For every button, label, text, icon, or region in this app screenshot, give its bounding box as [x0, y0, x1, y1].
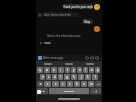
button[interactable]: Thank you for your reply [63, 4, 93, 9]
button[interactable]: a [40, 74, 45, 80]
staticText: Okay [84, 20, 91, 24]
staticText: p [97, 68, 99, 72]
button[interactable] [86, 63, 94, 65]
staticText: m [90, 82, 93, 86]
button[interactable]: Here is the information you need [46, 33, 86, 38]
button[interactable]: d [52, 74, 57, 80]
button[interactable] [65, 63, 73, 65]
button[interactable]: c [60, 81, 66, 87]
staticText: n [83, 82, 85, 86]
button[interactable]: z [44, 81, 51, 87]
button[interactable]: j [78, 74, 84, 80]
button[interactable]: App icon [37, 90, 41, 94]
button[interactable]: Emoji [85, 56, 89, 60]
button[interactable]: k [85, 74, 91, 80]
button[interactable]: Enter [90, 88, 101, 94]
button[interactable]: Contact avatar [94, 4, 100, 10]
staticText: j [81, 75, 82, 79]
button[interactable]: Attach [38, 56, 42, 60]
staticText: r [60, 68, 62, 72]
staticText: d [54, 75, 56, 79]
staticText: Sure, let me check the details [44, 13, 78, 17]
staticText: f [60, 75, 61, 79]
staticText: x [55, 82, 57, 86]
staticText: Thank you for your reply [63, 5, 93, 9]
staticText: c [62, 82, 64, 86]
staticText: q [39, 68, 41, 72]
staticText: o [91, 68, 93, 72]
button[interactable]: e [51, 67, 57, 73]
staticText: h [73, 75, 75, 79]
button[interactable]: Gallery [95, 56, 99, 60]
staticText: ?123 [40, 90, 45, 93]
staticText: a [42, 75, 44, 79]
button[interactable]: Space [49, 88, 89, 94]
staticText: l [95, 75, 96, 79]
button[interactable]: t [65, 67, 70, 73]
button[interactable]: p [95, 67, 100, 73]
button[interactable]: w [44, 67, 50, 73]
staticText: g [66, 75, 68, 79]
staticText: k [87, 75, 89, 79]
button[interactable]: q [37, 67, 43, 73]
button[interactable]: m [88, 81, 94, 87]
staticText: Here is the information you need [47, 34, 85, 38]
button[interactable]: l [92, 74, 98, 80]
button[interactable]: r [58, 67, 64, 73]
button[interactable]: f [58, 74, 63, 80]
staticText: i [85, 68, 86, 72]
button[interactable]: y [71, 67, 76, 73]
button[interactable]: Contact avatar [94, 26, 100, 32]
button[interactable]: v [67, 81, 73, 87]
button[interactable]: Backspace [95, 81, 101, 87]
staticText: v [69, 82, 71, 86]
button[interactable]: Okay [82, 19, 93, 24]
staticText: Write a message [43, 56, 85, 60]
button[interactable]: n [81, 81, 87, 87]
button[interactable] [44, 63, 52, 65]
staticText: w [46, 68, 49, 72]
staticText: y [73, 68, 75, 72]
staticText: b [76, 82, 78, 86]
staticText: u [79, 68, 81, 72]
button[interactable]: u [77, 67, 82, 73]
staticText: z [47, 82, 49, 86]
button[interactable]: s [46, 74, 51, 80]
button[interactable]: o [89, 67, 94, 73]
button[interactable]: Shift [37, 81, 43, 87]
button[interactable]: Sure, let me check the details [43, 12, 79, 17]
button[interactable]: b [74, 81, 80, 87]
staticText: e [53, 68, 55, 72]
button[interactable]: g [64, 74, 70, 80]
button[interactable]: i [83, 67, 88, 73]
staticText: s [48, 75, 50, 79]
button[interactable]: h [71, 74, 77, 80]
button[interactable]: Camera [90, 56, 94, 60]
button[interactable]: ?123 [37, 88, 48, 94]
button[interactable]: x [52, 81, 59, 87]
staticText: t [67, 68, 68, 72]
